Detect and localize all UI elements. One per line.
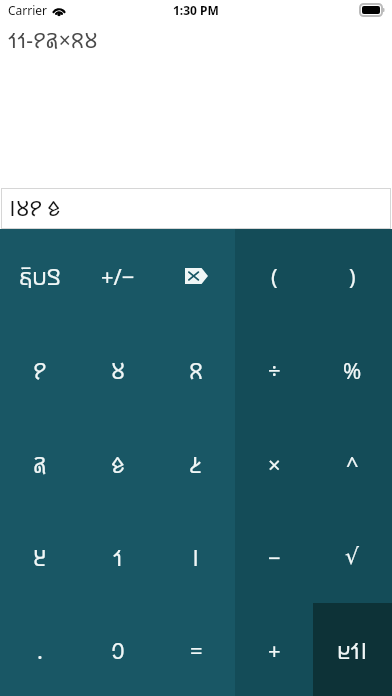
button[interactable]: 𞥙 [0, 323, 79, 417]
button[interactable]: ^ [313, 417, 392, 510]
button[interactable]: . [0, 603, 79, 696]
button[interactable]: + [235, 603, 313, 696]
button[interactable]: 𞥑 [157, 510, 235, 603]
staticText: % [343, 355, 362, 385]
staticText: 𞥑 [192, 542, 200, 572]
button[interactable]: − [235, 510, 313, 603]
staticText: 𞥑𞥒𞤪 [337, 635, 368, 665]
staticText: √ [345, 544, 360, 570]
staticText: 𞥖 [33, 449, 47, 479]
button[interactable]: 𞥑𞥒𞤪 [313, 603, 392, 696]
button[interactable]: ÷ [235, 323, 313, 417]
button[interactable]: × [235, 417, 313, 510]
button[interactable]: √ [313, 510, 392, 603]
staticText: 𞥔 [189, 449, 203, 479]
staticText: 𞥘𞥗×𞥖𞥙-𞥒𞥒 [8, 26, 98, 55]
staticText: 𞥘 [111, 355, 126, 385]
button[interactable]: % [313, 323, 392, 417]
button[interactable]: Backspace [157, 229, 235, 323]
button[interactable]: 𞥕 [79, 417, 157, 510]
staticText: +/− [101, 261, 135, 291]
staticText: 𞥕 𞥙𞥘𞥑 [9, 194, 61, 223]
staticText: = [190, 635, 203, 665]
staticText: 𞤃𞤭𞤻𞥆 [19, 261, 61, 291]
staticText: − [268, 542, 281, 572]
button[interactable]: 𞥖 [0, 417, 79, 510]
staticText: 𞥗 [189, 355, 204, 385]
button[interactable]: = [157, 603, 235, 696]
button[interactable]: 𞤃𞤭𞤻𞥆 [0, 229, 79, 323]
staticText: 1:30 PM [173, 2, 219, 18]
staticText: ^ [346, 449, 359, 479]
staticText: × [268, 449, 281, 479]
button[interactable]: ) [313, 229, 392, 323]
button[interactable]: ( [235, 229, 313, 323]
button[interactable]: 𞥐 [79, 603, 157, 696]
staticText: ( [271, 261, 278, 291]
button[interactable]: 𞥒 [79, 510, 157, 603]
staticText: + [268, 635, 281, 665]
button[interactable]: 𞥘 [79, 323, 157, 417]
button[interactable]: 𞥔 [157, 417, 235, 510]
staticText: 𞥐 [111, 635, 125, 665]
staticText: 𞥕 [111, 449, 125, 479]
staticText: . [37, 635, 43, 665]
button[interactable]: 𞥗 [157, 323, 235, 417]
button[interactable]: +/− [79, 229, 157, 323]
button[interactable]: 𞥓 [0, 510, 79, 603]
staticText: ÷ [268, 355, 281, 385]
staticText: Carrier [8, 2, 48, 18]
staticText: 𞥙 [33, 355, 47, 385]
staticText: ) [349, 261, 356, 291]
staticText: 𞥓 [33, 542, 47, 572]
staticText: 𞥒 [113, 542, 123, 572]
